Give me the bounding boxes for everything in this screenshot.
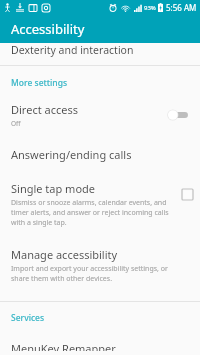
button[interactable]: Answering/ending calls xyxy=(0,144,200,165)
staticText: Dismiss or snooze alarms, calendar event… xyxy=(11,198,177,228)
staticText: Answering/ending calls xyxy=(11,147,132,162)
button[interactable]: Single tap mode xyxy=(0,179,200,232)
staticText: Import and export your accessibility set… xyxy=(11,264,188,284)
staticText: Services xyxy=(11,312,45,324)
staticText: More settings xyxy=(11,77,68,89)
staticText: Direct access xyxy=(11,102,78,117)
button[interactable]: Single tap mode checkbox, unchecked xyxy=(181,188,194,201)
button[interactable]: MenuKey Remapper xyxy=(0,339,200,355)
staticText: 93% xyxy=(144,4,156,12)
button[interactable]: Direct access toggle, off xyxy=(165,108,191,122)
button[interactable]: Dexterity and interaction xyxy=(0,43,200,65)
staticText: MenuKey Remapper xyxy=(11,341,116,351)
staticText: 5:56 AM xyxy=(166,2,197,13)
button[interactable]: Manage accessibility xyxy=(0,245,200,288)
button[interactable]: Direct access xyxy=(0,100,200,134)
staticText: Accessibility xyxy=(11,20,85,38)
staticText: Off xyxy=(11,119,21,128)
staticText: Manage accessibility xyxy=(11,247,118,262)
staticText: Single tap mode xyxy=(11,181,96,196)
staticText: Dexterity and interaction xyxy=(11,43,134,57)
